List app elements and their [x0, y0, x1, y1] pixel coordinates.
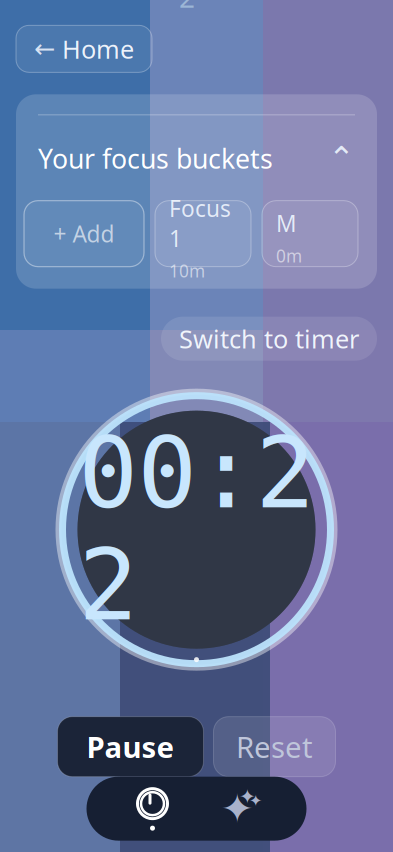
staticText: 00:22 [78, 417, 314, 641]
staticText: ← [34, 34, 55, 63]
staticText: Reset [236, 727, 313, 766]
button[interactable]: Timer [108, 777, 196, 841]
staticText: Home [62, 32, 134, 66]
staticText: 10m [169, 259, 205, 282]
staticText: + Add [53, 219, 114, 249]
button[interactable]: Reset [213, 717, 335, 777]
button[interactable]: Effects [196, 777, 284, 841]
button[interactable]: ← [16, 25, 152, 72]
button[interactable]: Your focus buckets [32, 140, 361, 177]
staticText: 156:42 [179, 0, 251, 16]
staticText: ⌃ [328, 140, 355, 177]
staticText: ✦ [220, 786, 254, 831]
button[interactable]: Pause [57, 717, 203, 777]
staticText: Pause [86, 727, 174, 766]
button[interactable]: Focus 1 [155, 201, 251, 267]
staticText: ✦ [239, 785, 256, 808]
button[interactable]: Switch to timer [161, 317, 377, 361]
staticText: Your focus buckets [38, 141, 273, 176]
staticText: 0m [276, 244, 302, 267]
staticText: Switch to timer [179, 322, 359, 355]
button[interactable]: M [262, 201, 358, 267]
button[interactable]: + Add [24, 201, 144, 267]
staticText: ✦ [249, 792, 262, 810]
staticText: Focus 1 [169, 193, 231, 253]
staticText: M [276, 208, 297, 238]
staticText: 00:22 [78, 417, 314, 641]
